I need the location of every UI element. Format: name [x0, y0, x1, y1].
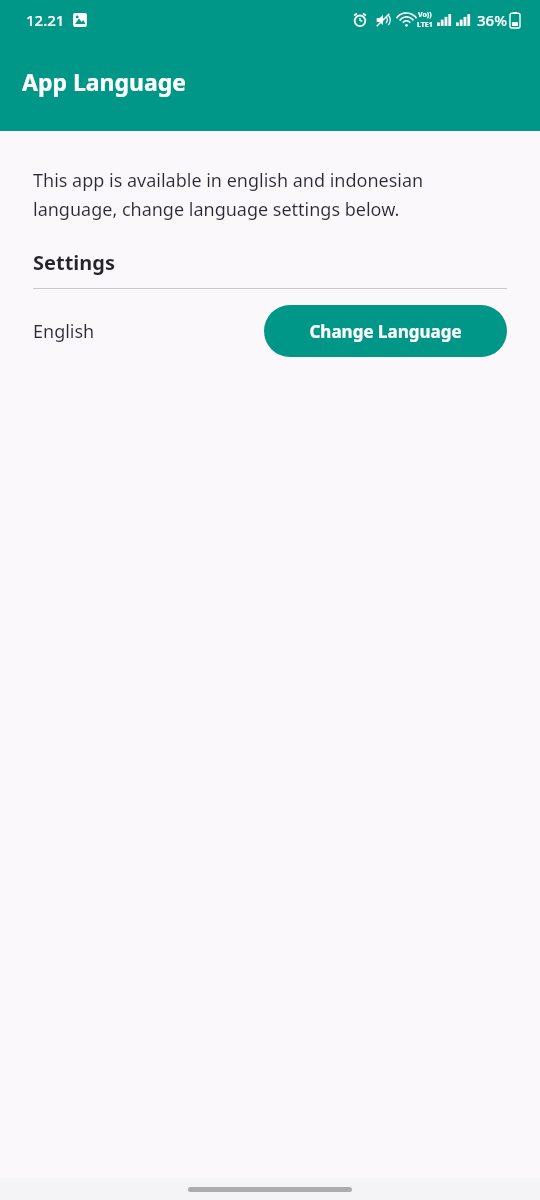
staticText: This app is available in english and ind…: [33, 168, 507, 221]
staticText: Change Language: [309, 320, 462, 343]
staticText: 12.21: [26, 10, 65, 30]
staticText: LTE1: [417, 20, 433, 30]
button[interactable]: Change Language: [264, 305, 507, 357]
staticText: App Language: [22, 66, 187, 97]
staticText: 36%: [477, 10, 507, 30]
staticText: Vo)): [418, 10, 432, 20]
staticText: English: [33, 319, 95, 344]
staticText: Settings: [33, 249, 115, 276]
